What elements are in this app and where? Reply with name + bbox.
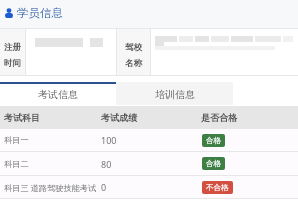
staticText: 考试成绩 [101, 112, 198, 123]
button[interactable]: 考试信息 [0, 82, 116, 105]
staticText: 名称 [125, 58, 142, 69]
button[interactable]: 科目一 [0, 129, 298, 151]
staticText: 80 [101, 158, 198, 170]
staticText: 培训信息 [155, 88, 195, 101]
staticText: 时间 [4, 58, 21, 69]
button[interactable]: 科目二 [0, 152, 298, 175]
button[interactable]: 科目三 道路驾驶技能考试 [0, 176, 298, 198]
staticText: 学员信息 [17, 6, 63, 20]
staticText: 考试信息 [38, 88, 78, 101]
staticText: 科目三 道路驾驶技能考试 [4, 182, 99, 193]
staticText: 合格 [206, 159, 221, 168]
button[interactable]: 培训信息 [116, 82, 233, 105]
staticText: 驾校 [125, 42, 142, 53]
staticText: 注册 [4, 42, 21, 53]
staticText: 考试科目 [4, 112, 97, 123]
staticText: 不合格 [206, 183, 229, 192]
staticText: 0 [101, 181, 198, 193]
staticText: 科目二 [4, 159, 99, 169]
staticText: 科目一 [4, 135, 99, 145]
staticText: 合格 [206, 136, 221, 145]
staticText: 100 [101, 134, 198, 146]
staticText: 是否合格 [201, 112, 237, 123]
